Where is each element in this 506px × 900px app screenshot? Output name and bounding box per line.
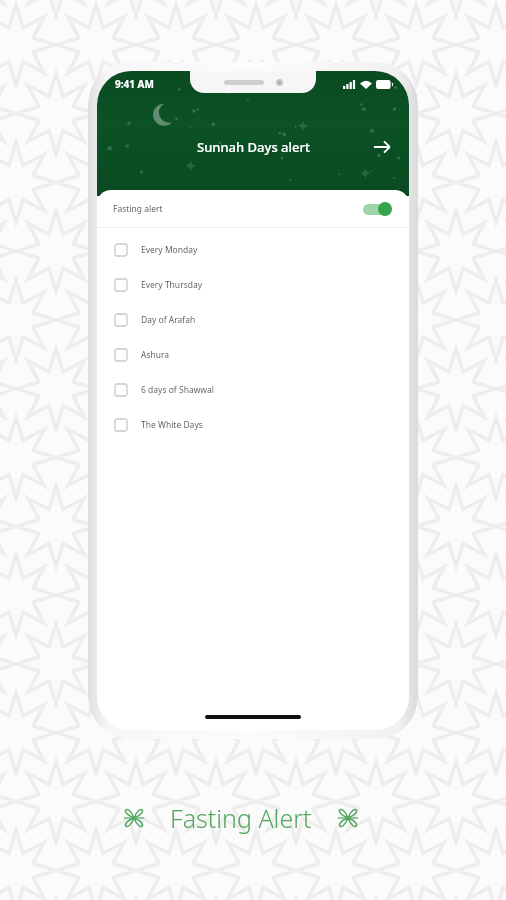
staticText: Ashura — [141, 349, 170, 361]
button[interactable]: Next — [367, 132, 397, 162]
button[interactable]: The White Days — [97, 407, 409, 442]
staticText: Day of Arafah — [141, 314, 196, 326]
staticText: Sunnah Days alert — [197, 138, 310, 156]
staticText: Every Thursday — [141, 279, 203, 291]
button[interactable]: Every Monday — [97, 232, 409, 267]
staticText: Every Monday — [141, 244, 198, 256]
button[interactable]: Ashura — [97, 337, 409, 372]
staticText: Fasting Alert — [170, 801, 312, 835]
button[interactable]: Every Thursday — [97, 267, 409, 302]
staticText: 9:41 AM — [115, 77, 154, 91]
button[interactable]: Day of Arafah — [97, 302, 409, 337]
button[interactable]: 6 days of Shawwal — [97, 372, 409, 407]
staticText: The White Days — [141, 419, 203, 431]
button[interactable]: Fasting alert — [97, 190, 409, 227]
staticText: 6 days of Shawwal — [141, 384, 214, 396]
staticText: Fasting alert — [113, 203, 163, 215]
